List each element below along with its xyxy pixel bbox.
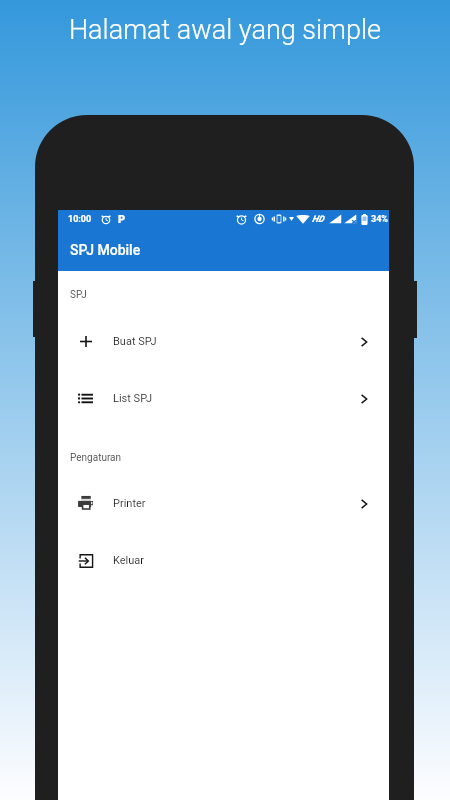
button[interactable]: List SPJ — [58, 370, 389, 427]
staticText: 34% — [371, 214, 388, 225]
staticText: Halamat awal yang simple — [0, 14, 450, 46]
staticText: Buat SPJ — [113, 335, 157, 348]
staticText: Keluar — [113, 554, 145, 567]
staticText: List SPJ — [113, 392, 153, 405]
other: Open Buat SPJ — [358, 336, 370, 348]
button[interactable]: Keluar — [58, 532, 389, 589]
staticText: Printer — [113, 497, 146, 510]
staticText: HD — [312, 214, 324, 225]
staticText: SPJ — [70, 289, 87, 301]
button[interactable]: Buat SPJ — [58, 313, 389, 370]
other: Open Printer — [358, 498, 370, 510]
button[interactable]: Printer — [58, 475, 389, 532]
staticText: Pengaturan — [70, 452, 122, 464]
other: Open List SPJ — [358, 393, 370, 405]
staticText: SPJ Mobile — [70, 242, 141, 258]
staticText: P — [118, 213, 126, 224]
staticText: 10:00 — [68, 214, 92, 225]
